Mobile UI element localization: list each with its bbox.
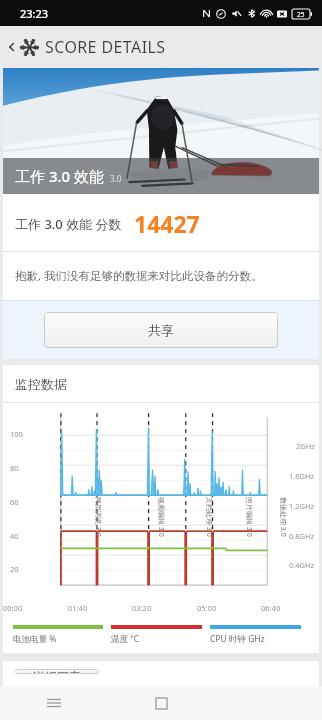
staticText: SCORE DETAILS — [45, 36, 166, 58]
staticText: 网页浏览 3.0 — [93, 497, 103, 537]
staticText: 20 — [10, 564, 19, 574]
staticText: 3.0 — [110, 173, 122, 184]
staticText: 23:23 — [20, 6, 49, 21]
button[interactable]: Home — [108, 686, 215, 720]
staticText: 电池电量 % — [13, 633, 57, 645]
staticText: 60 — [10, 497, 19, 507]
staticText: 01:40 — [68, 603, 88, 613]
staticText: 视频编辑 3.0 — [156, 497, 166, 537]
staticText: 温度 °C — [111, 633, 140, 645]
staticText: CPU 时钟 GHz — [210, 633, 265, 645]
staticText: 25 — [297, 10, 305, 19]
staticText: 05:00 — [197, 603, 217, 613]
staticText: 14427 — [134, 208, 200, 239]
staticText: 80 — [10, 463, 19, 473]
staticText: 06:40 — [261, 603, 281, 613]
staticText: 监控数据 — [15, 376, 67, 392]
staticText: 0.8GHz — [289, 531, 315, 541]
staticText: 数据处理 3.0 — [278, 497, 288, 537]
staticText: 1.2GHz — [289, 501, 315, 511]
staticText: 工作 3.0 效能 分数 — [15, 215, 122, 233]
button[interactable]: 共享 — [44, 312, 278, 348]
staticText: 03:20 — [132, 603, 152, 613]
staticText: 共享 — [148, 322, 174, 338]
staticText: 详细图表 — [33, 669, 81, 674]
button[interactable]: Recent apps — [0, 686, 108, 720]
button[interactable]: Back — [4, 36, 168, 58]
staticText: 抱歉, 我们没有足够的数据来对比此设备的分数。 — [15, 268, 263, 284]
staticText: 2GHz — [296, 441, 315, 451]
staticText: 0.4GHz — [289, 560, 315, 570]
staticText: 40 — [10, 531, 19, 541]
button[interactable]: 详细图表 — [15, 669, 99, 674]
staticText: 1.6GHz — [289, 471, 315, 481]
staticText: 工作 3.0 效能 — [15, 166, 105, 186]
staticText: 照片编辑 3.0 — [244, 497, 254, 537]
staticText: 文档处理 3.0 — [204, 497, 214, 537]
staticText: 00:00 — [3, 603, 23, 613]
staticText: 100 — [10, 429, 23, 439]
